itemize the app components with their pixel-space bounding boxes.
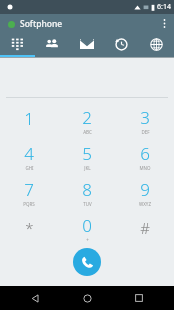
button[interactable]: 3 [116, 102, 174, 138]
staticText: * [25, 218, 34, 238]
button[interactable]: Recent apps [122, 286, 156, 310]
staticText: ABC [83, 129, 92, 135]
staticText: 6:14 [157, 2, 171, 12]
button[interactable]: 0 [58, 210, 116, 246]
button[interactable]: 1 [0, 102, 58, 138]
staticText: GHI [25, 165, 34, 171]
button[interactable]: 7 [0, 174, 58, 210]
button[interactable]: Back [18, 286, 52, 310]
button[interactable]: 9 [116, 174, 174, 210]
staticText: 1 [24, 107, 34, 130]
staticText: 4 [24, 142, 34, 165]
staticText: JKL [84, 165, 91, 171]
staticText: # [140, 218, 150, 238]
staticText: 6 [140, 142, 150, 165]
button[interactable]: Home [70, 286, 104, 310]
staticText: TUV [83, 201, 92, 207]
staticText: Softphone [20, 18, 63, 30]
staticText: 8 [82, 178, 92, 201]
button[interactable]: Dialpad [0, 33, 34, 55]
button[interactable]: 2 [58, 102, 116, 138]
staticText: DEF [141, 129, 150, 135]
button[interactable]: * [0, 210, 58, 246]
button[interactable]: 5 [58, 138, 116, 174]
staticText: 0 [82, 214, 92, 237]
staticText: 3 [140, 106, 150, 129]
button[interactable]: Network [139, 33, 174, 55]
button[interactable]: Call [73, 248, 101, 276]
button[interactable]: # [116, 210, 174, 246]
staticText: MNO [139, 165, 151, 171]
staticText: 7 [24, 178, 34, 201]
button[interactable]: More options [154, 14, 174, 33]
button[interactable]: Messages [69, 33, 104, 55]
staticText: 2 [82, 106, 92, 129]
staticText: 9 [140, 178, 150, 201]
button[interactable]: 6 [116, 138, 174, 174]
button[interactable]: Recents [104, 33, 139, 55]
staticText: 5 [82, 142, 92, 165]
staticText: + [86, 237, 89, 243]
staticText: PQRS [23, 201, 35, 207]
staticText: WXYZ [139, 201, 151, 207]
button[interactable]: Contacts [34, 33, 69, 55]
button[interactable]: 8 [58, 174, 116, 210]
button[interactable]: 4 [0, 138, 58, 174]
